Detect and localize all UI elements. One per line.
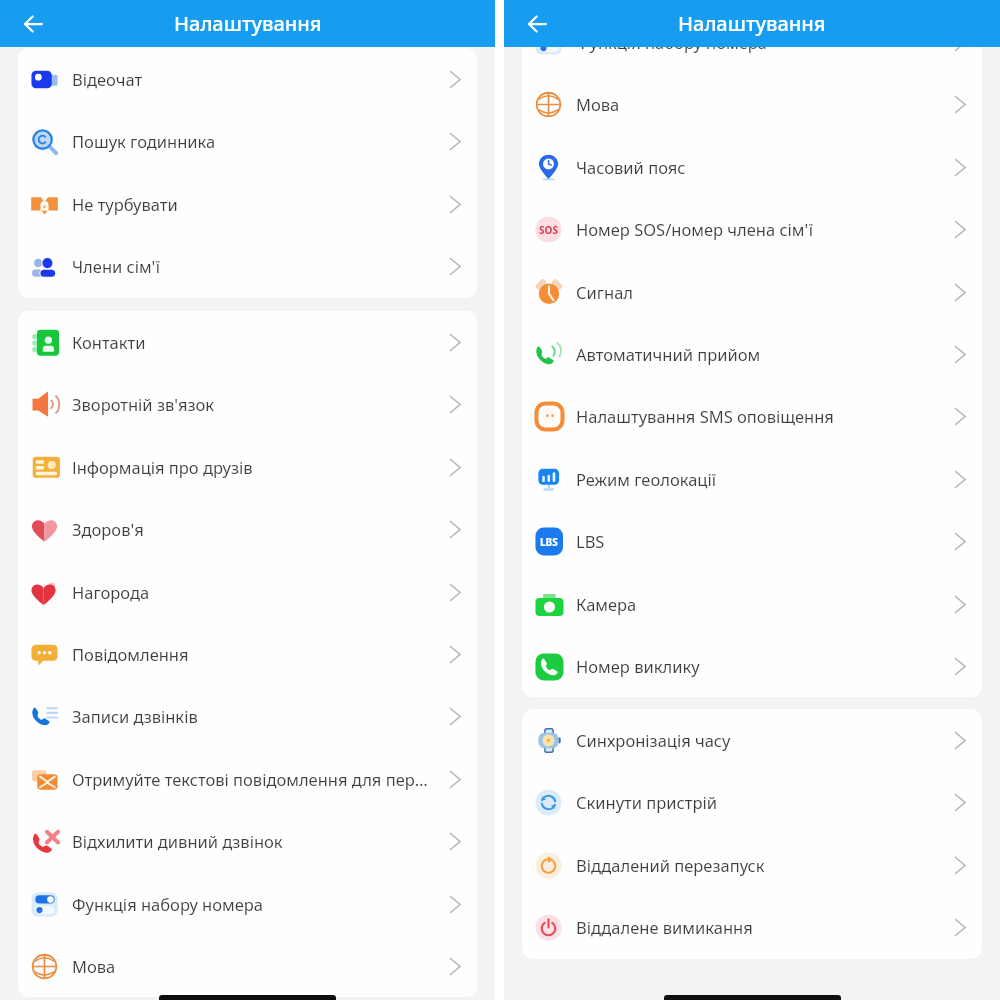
- button[interactable]: Повідомлення: [18, 623, 477, 685]
- button[interactable]: SOS: [522, 198, 982, 260]
- staticText: Записи дзвінків: [72, 705, 436, 727]
- staticText: Мова: [576, 93, 941, 115]
- staticText: Відхилити дивний дзвінок: [72, 830, 436, 852]
- button[interactable]: Часовий пояс: [522, 136, 982, 198]
- button[interactable]: Back: [523, 10, 551, 38]
- button[interactable]: Відхилити дивний дзвінок: [18, 810, 477, 872]
- button[interactable]: Члени сім'ї: [18, 235, 477, 297]
- button[interactable]: Номер виклику: [522, 635, 982, 697]
- button[interactable]: Камера: [522, 573, 982, 635]
- staticText: Повідомлення: [72, 643, 436, 665]
- button[interactable]: Отримуйте текстові повідомлення для пере…: [18, 748, 477, 810]
- staticText: Автоматичний прийом: [576, 343, 941, 365]
- button[interactable]: Контакти: [18, 311, 477, 373]
- button[interactable]: Мова: [18, 935, 477, 997]
- staticText: SOS: [539, 223, 558, 237]
- staticText: Віддалений перезапуск: [576, 854, 941, 876]
- staticText: Мова: [72, 955, 436, 977]
- staticText: Синхронізація часу: [576, 729, 941, 751]
- staticText: Здоров'я: [72, 518, 436, 540]
- staticText: Пошук годинника: [72, 130, 436, 152]
- button[interactable]: Налаштування SMS оповіщення: [522, 385, 982, 447]
- staticText: Зворотній зв'язок: [72, 393, 436, 415]
- staticText: LBS: [540, 535, 558, 549]
- button[interactable]: Мова: [522, 73, 982, 135]
- button[interactable]: Записи дзвінків: [18, 685, 477, 747]
- button[interactable]: LBS: [522, 510, 982, 572]
- staticText: Контакти: [72, 331, 436, 353]
- button[interactable]: Нагорода: [18, 561, 477, 623]
- staticText: Налаштування: [678, 10, 826, 37]
- button[interactable]: Сигнал: [522, 261, 982, 323]
- staticText: Налаштування: [174, 10, 322, 37]
- staticText: Налаштування SMS оповіщення: [576, 405, 941, 427]
- staticText: Часовий пояс: [576, 156, 941, 178]
- button[interactable]: Здоров'я: [18, 498, 477, 560]
- staticText: Камера: [576, 593, 941, 615]
- button[interactable]: Пошук годинника: [18, 110, 477, 172]
- staticText: Сигнал: [576, 281, 941, 303]
- staticText: Режим геолокації: [576, 468, 941, 490]
- staticText: Віддалене вимикання: [576, 916, 941, 938]
- staticText: Функція набору номера: [576, 31, 941, 53]
- button[interactable]: Функція набору номера: [18, 873, 477, 935]
- button[interactable]: Автоматичний прийом: [522, 323, 982, 385]
- button[interactable]: Віддалений перезапуск: [522, 834, 982, 896]
- staticText: Отримуйте текстові повідомлення для пере…: [72, 768, 436, 790]
- button[interactable]: Синхронізація часу: [522, 709, 982, 771]
- staticText: Відеочат: [72, 68, 436, 90]
- button[interactable]: Режим геолокації: [522, 448, 982, 510]
- button[interactable]: Функція набору номера: [522, 11, 982, 73]
- staticText: Члени сім'ї: [72, 255, 436, 277]
- staticText: Інформація про друзів: [72, 456, 436, 478]
- staticText: Скинути пристрій: [576, 791, 941, 813]
- button[interactable]: Зворотній зв'язок: [18, 373, 477, 435]
- button[interactable]: Віддалене вимикання: [522, 896, 982, 958]
- staticText: Нагорода: [72, 581, 436, 603]
- button[interactable]: Відеочат: [18, 48, 477, 110]
- staticText: Номер виклику: [576, 655, 941, 677]
- button[interactable]: Інформація про друзів: [18, 436, 477, 498]
- staticText: LBS: [576, 530, 941, 552]
- button[interactable]: Не турбувати: [18, 173, 477, 235]
- button[interactable]: Скинути пристрій: [522, 771, 982, 833]
- staticText: Функція набору номера: [72, 893, 436, 915]
- staticText: Номер SOS/номер члена сім'ї: [576, 218, 941, 240]
- staticText: Не турбувати: [72, 193, 436, 215]
- button[interactable]: Back: [19, 10, 47, 38]
